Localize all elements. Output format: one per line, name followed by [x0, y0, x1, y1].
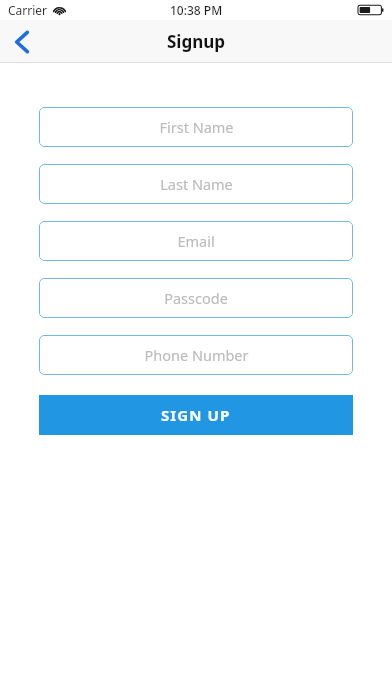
staticText: Passcode: [164, 288, 228, 308]
staticText: Signup: [167, 30, 226, 53]
button[interactable]: First Name: [39, 107, 353, 147]
staticText: SIGN UP: [161, 405, 231, 425]
button[interactable]: Last Name: [39, 164, 353, 204]
button[interactable]: SIGN UP: [39, 395, 353, 435]
button[interactable]: Email: [39, 221, 353, 261]
button[interactable]: Passcode: [39, 278, 353, 318]
staticText: Last Name: [160, 174, 233, 194]
button[interactable]: Back: [0, 20, 44, 63]
staticText: Carrier: [8, 2, 48, 18]
button[interactable]: Phone Number: [39, 335, 353, 375]
staticText: Email: [177, 231, 215, 251]
staticText: 10:38 PM: [170, 2, 223, 18]
staticText: First Name: [159, 117, 234, 137]
staticText: Phone Number: [144, 345, 249, 365]
